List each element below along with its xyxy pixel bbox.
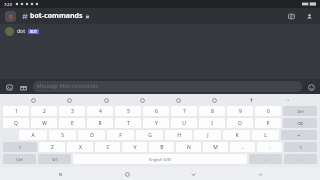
button[interactable]: M bbox=[203, 142, 228, 152]
button[interactable]: Toolbar 6 bbox=[246, 95, 256, 105]
button[interactable]: 2 bbox=[31, 106, 57, 116]
staticText: ⌫ bbox=[297, 121, 303, 126]
button[interactable]: Avatar bbox=[5, 27, 14, 36]
button[interactable]: X bbox=[67, 142, 93, 152]
staticText: Q bbox=[14, 120, 18, 127]
button[interactable]: Toolbar 7 bbox=[282, 95, 292, 105]
button[interactable]: Channel bbox=[22, 13, 29, 20]
button[interactable]: 9 bbox=[227, 106, 253, 116]
button[interactable]: Y bbox=[143, 118, 169, 128]
staticText: W bbox=[42, 120, 47, 127]
button[interactable]: 1 bbox=[3, 106, 29, 116]
staticText: L bbox=[264, 132, 267, 139]
button[interactable]: Q bbox=[3, 118, 29, 128]
button[interactable]: Emoji bbox=[306, 82, 316, 92]
staticText: 5 bbox=[127, 108, 130, 115]
button[interactable]: 3 bbox=[59, 106, 85, 116]
button[interactable]: 5 bbox=[115, 106, 141, 116]
button[interactable]: Toolbar 5 bbox=[209, 95, 219, 105]
button[interactable]: Threads bbox=[285, 10, 297, 22]
button[interactable]: English (US) bbox=[73, 154, 247, 164]
staticText: 4 bbox=[99, 108, 102, 115]
button[interactable]: N bbox=[176, 142, 201, 152]
staticText: T bbox=[127, 120, 130, 127]
staticText: ⇧ bbox=[18, 145, 22, 150]
staticText: 0 bbox=[267, 108, 270, 115]
button[interactable]: Toolbar 0 bbox=[28, 95, 38, 105]
button[interactable]: O bbox=[227, 118, 253, 128]
button[interactable]: U bbox=[171, 118, 197, 128]
button[interactable]: G bbox=[136, 130, 163, 140]
button[interactable]: Add attachment bbox=[4, 82, 14, 92]
staticText: 1 bbox=[15, 108, 18, 115]
button[interactable]: 8 bbox=[199, 106, 225, 116]
button[interactable]: E bbox=[59, 118, 85, 128]
staticText: H bbox=[177, 132, 181, 139]
button[interactable]: 4 bbox=[87, 106, 113, 116]
button[interactable]: bot-commands bbox=[30, 11, 83, 21]
button[interactable]: ⇧ bbox=[284, 142, 317, 152]
staticText: B bbox=[160, 144, 164, 151]
button[interactable]: W bbox=[31, 118, 57, 128]
button[interactable]: Members bbox=[303, 10, 315, 22]
button[interactable]: Toolbar 3 bbox=[137, 95, 147, 105]
button[interactable]: C bbox=[95, 142, 120, 152]
button[interactable]: Toolbar 2 bbox=[101, 95, 111, 105]
button[interactable]: ⇧ bbox=[3, 142, 37, 152]
staticText: 2 bbox=[43, 108, 46, 115]
button[interactable]: T bbox=[115, 118, 141, 128]
button[interactable]: Ctrl bbox=[3, 154, 36, 164]
button[interactable]: H bbox=[165, 130, 192, 140]
button[interactable]: J bbox=[194, 130, 221, 140]
staticText: S bbox=[61, 132, 64, 139]
staticText: ↵ bbox=[297, 133, 301, 138]
staticText: Ctrl bbox=[16, 157, 23, 162]
button[interactable]: 7 bbox=[171, 106, 197, 116]
staticText: BOT bbox=[30, 29, 37, 34]
button[interactable]: R bbox=[87, 118, 113, 128]
button[interactable]: Del bbox=[283, 106, 317, 116]
staticText: X bbox=[79, 144, 82, 151]
button[interactable]: Keyboard layout bbox=[254, 168, 266, 180]
button[interactable]: I bbox=[199, 118, 225, 128]
button[interactable]: B bbox=[149, 142, 174, 152]
button[interactable]: , bbox=[230, 142, 255, 152]
staticText: G bbox=[148, 132, 152, 139]
staticText: English (US) bbox=[149, 157, 172, 162]
staticText: ‹ bbox=[265, 157, 267, 162]
staticText: 9 bbox=[239, 108, 242, 115]
staticText: 7:23 bbox=[4, 2, 12, 7]
button[interactable]: Server bbox=[5, 11, 16, 22]
staticText: D bbox=[90, 132, 94, 139]
staticText: A bbox=[31, 132, 35, 139]
button[interactable]: Back bbox=[187, 168, 199, 180]
button[interactable]: Home bbox=[121, 168, 133, 180]
button[interactable]: 0 bbox=[255, 106, 281, 116]
button[interactable]: Gift bbox=[18, 82, 28, 92]
button[interactable]: F bbox=[107, 130, 134, 140]
staticText: , bbox=[242, 144, 244, 151]
button[interactable]: 6 bbox=[143, 106, 169, 116]
button[interactable]: Recents bbox=[54, 168, 66, 180]
button[interactable]: ⌫ bbox=[283, 118, 317, 128]
button[interactable]: A bbox=[19, 130, 47, 140]
button[interactable]: Z bbox=[39, 142, 65, 152]
staticText: ⇧ bbox=[299, 145, 303, 150]
staticText: 8 bbox=[211, 108, 214, 115]
button[interactable]: !#1 bbox=[38, 154, 71, 164]
button[interactable]: Toolbar 1 bbox=[64, 95, 74, 105]
button[interactable]: V bbox=[122, 142, 147, 152]
button[interactable]: D bbox=[78, 130, 105, 140]
button[interactable]: K bbox=[223, 130, 250, 140]
button[interactable]: S bbox=[49, 130, 76, 140]
staticText: K bbox=[235, 132, 239, 139]
staticText: M bbox=[213, 144, 218, 151]
button[interactable]: Toolbar 4 bbox=[173, 95, 183, 105]
button[interactable]: ↵ bbox=[281, 130, 317, 140]
button[interactable]: L bbox=[252, 130, 279, 140]
button[interactable]: P bbox=[255, 118, 281, 128]
button[interactable]: Message #bot-commands bbox=[37, 81, 298, 92]
